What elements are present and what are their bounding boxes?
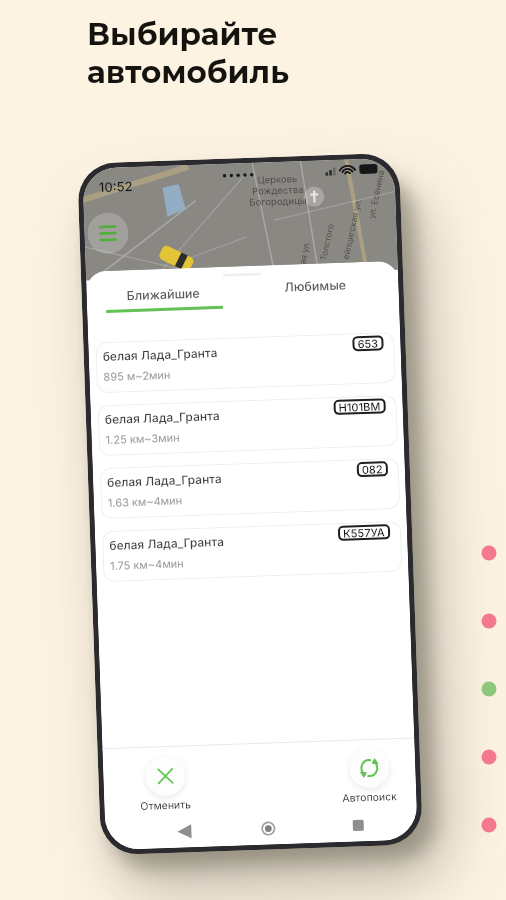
- staticText: белая Лада_Гранта: [107, 471, 222, 490]
- button[interactable]: Меню: [87, 212, 129, 254]
- staticText: белая Лада_Гранта: [109, 534, 225, 553]
- staticText: ул. Толстого: [313, 222, 338, 276]
- button[interactable]: белая Лада_Гранта: [97, 395, 398, 456]
- staticText: ейпцигская ул.: [339, 197, 366, 261]
- staticText: Н101ВМ: [338, 399, 381, 414]
- staticText: Выбирайте: [87, 15, 278, 53]
- staticText: белая Лада_Гранта: [105, 408, 220, 427]
- staticText: Отменить: [140, 798, 192, 813]
- staticText: Любимые: [284, 277, 347, 295]
- button[interactable]: белая Лада_Гранта: [100, 458, 400, 519]
- staticText: овая ул.: [294, 239, 313, 275]
- staticText: 653: [357, 336, 379, 350]
- button[interactable]: Назад: [169, 816, 200, 847]
- staticText: 1.25 км~3мин: [105, 430, 180, 446]
- button[interactable]: Автопоиск: [341, 747, 397, 805]
- staticText: К557УА: [343, 525, 385, 540]
- staticText: Церковь: [257, 173, 298, 185]
- staticText: Автопоиск: [342, 790, 397, 805]
- button[interactable]: Любимые: [239, 275, 392, 310]
- button[interactable]: Главный экран: [253, 813, 284, 844]
- button[interactable]: белая Лада_Гранта: [102, 521, 402, 582]
- staticText: 082: [362, 462, 383, 476]
- staticText: ул. Есенина: [365, 169, 388, 220]
- button[interactable]: белая Лада_Гранта: [95, 332, 396, 393]
- staticText: 10:52: [99, 178, 133, 195]
- staticText: 1.63 км~4мин: [108, 493, 183, 509]
- button[interactable]: Отменить: [139, 755, 192, 813]
- button[interactable]: Недавние приложения: [343, 810, 374, 841]
- staticText: 895 м~2мин: [103, 368, 171, 383]
- staticText: автомобиль: [87, 53, 290, 91]
- staticText: Ближайшие: [126, 286, 201, 303]
- button[interactable]: Ближайшие: [87, 283, 241, 328]
- staticText: белая Лада_Гранта: [102, 345, 218, 364]
- staticText: 1.75 км~4мин: [110, 556, 184, 572]
- staticText: Богородицы: [249, 195, 308, 208]
- staticText: Рождества: [252, 184, 304, 197]
